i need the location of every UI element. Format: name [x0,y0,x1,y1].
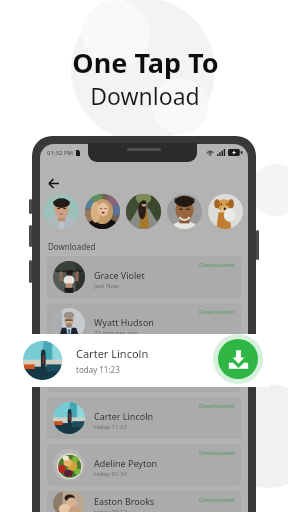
staticText: Downloaded [199,496,235,504]
staticText: Downloaded [199,355,235,363]
staticText: Download [90,80,200,111]
staticText: Easton Brooks [94,495,155,507]
staticText: One Tap To [72,44,219,81]
button[interactable]: Easton Brooks [47,491,241,512]
staticText: today 09:12 [94,508,127,512]
staticText: Downloaded [199,402,235,410]
button[interactable]: Back [43,173,63,193]
staticText: today 11:23 [76,364,120,375]
staticText: Downloaded [199,449,235,457]
staticText: Wyatt Hudson [94,316,154,328]
button[interactable]: Carter Lincoln [47,397,241,439]
staticText: Grace Violet [94,269,145,281]
staticText: 01:32 PM [47,149,73,157]
staticText: Carter Lincoln [76,346,149,361]
staticText: Downloaded [199,261,235,269]
staticText: Downloaded [48,241,96,252]
staticText: Adeline Peyton [94,457,158,469]
button[interactable]: Grace Violet [47,256,241,298]
staticText: today 11:23 [94,423,127,431]
button[interactable]: Carter Lincoln [47,350,241,392]
staticText: Just Now [94,282,119,290]
button[interactable]: Adeline Peyton [47,444,241,486]
button[interactable]: Download [218,339,258,379]
staticText: 21 minutes ago [94,329,138,337]
staticText: Carter Lincoln [94,363,154,375]
staticText: today 01:34 [94,470,127,478]
staticText: Carter Lincoln [94,410,154,422]
button[interactable]: Wyatt Hudson [47,303,241,345]
button[interactable] [44,194,79,229]
button[interactable]: Carter Lincoln [16,334,271,387]
button[interactable] [85,194,120,229]
staticText: Downloaded [199,308,235,316]
button[interactable] [126,194,161,229]
button[interactable] [208,194,243,229]
button[interactable] [167,194,202,229]
